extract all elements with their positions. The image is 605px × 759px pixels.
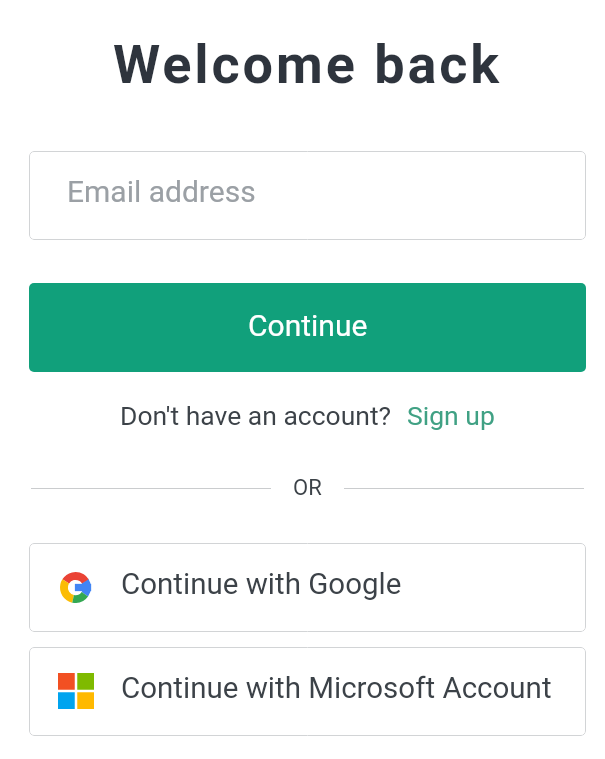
staticText: Welcome back [29,33,586,96]
staticText: Don't have an account? [120,400,392,431]
staticText: Sign up [407,400,495,431]
other: Continue with Google [60,572,91,603]
staticText: Email address [67,174,256,209]
other: Continue with Microsoft Account [58,673,94,709]
staticText: OR [293,475,322,501]
button[interactable]: Continue [29,283,586,372]
staticText: Continue with Google [121,567,402,602]
button[interactable]: Continue with Google [29,543,586,632]
button[interactable]: Continue with Microsoft Account [29,647,586,736]
staticText: Continue with Microsoft Account [121,671,552,706]
button[interactable]: Email address [29,151,586,240]
staticText: Continue [248,308,368,343]
button[interactable]: Sign up [407,400,495,431]
